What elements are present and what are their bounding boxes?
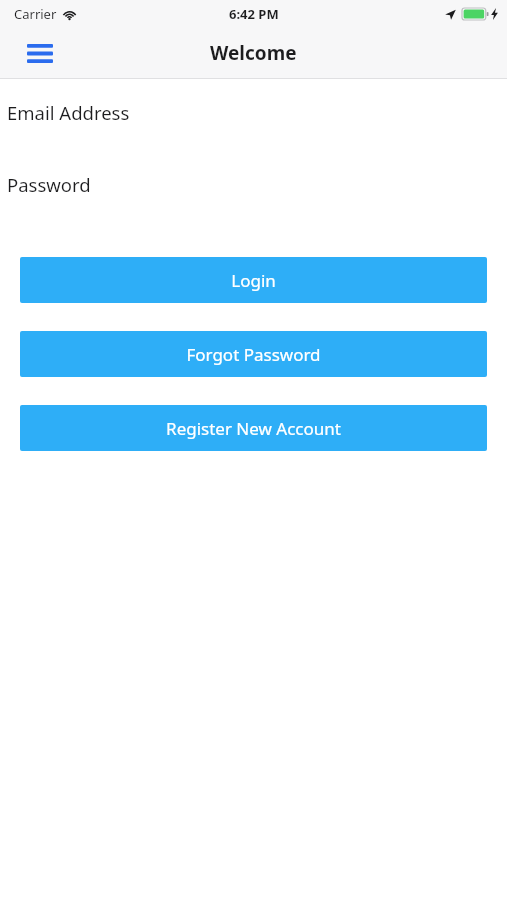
staticText: Password xyxy=(7,172,91,197)
button[interactable]: Register New Account xyxy=(20,405,487,451)
staticText: Carrier xyxy=(14,5,57,23)
staticText: Login xyxy=(231,269,276,292)
staticText: 6:42 PM xyxy=(229,5,279,23)
button[interactable]: Open navigation menu xyxy=(18,33,62,73)
button[interactable]: Login xyxy=(20,257,487,303)
staticText: Register New Account xyxy=(166,417,341,440)
staticText: Forgot Password xyxy=(186,343,321,366)
staticText: Email Address xyxy=(7,100,130,125)
button[interactable]: Forgot Password xyxy=(20,331,487,377)
staticText: Welcome xyxy=(210,40,297,66)
